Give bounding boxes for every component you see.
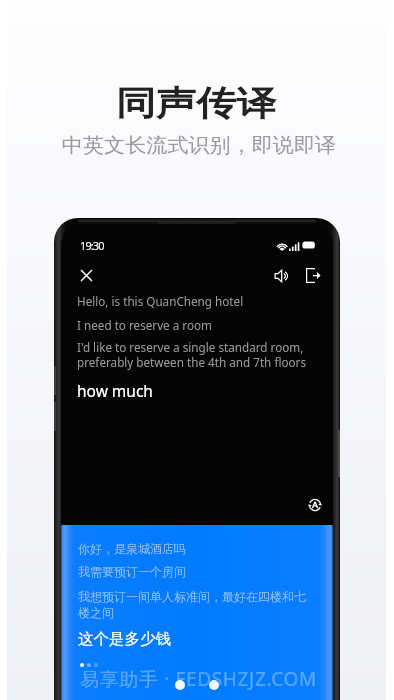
staticText: Hello, is this QuanCheng hotel: [77, 293, 244, 309]
staticText: I'd like to reserve a single standard ro…: [77, 339, 306, 371]
staticText: 同声传译: [116, 82, 276, 125]
staticText: 我需要预订一个房间: [78, 564, 186, 579]
staticText: how much: [77, 380, 153, 401]
button[interactable]: Exit: [302, 264, 325, 287]
button[interactable]: Speaker volume: [270, 264, 293, 287]
staticText: 易享助手 · FEDSHZJZ.COM: [80, 666, 317, 692]
staticText: 你好，是泉城酒店吗: [78, 541, 186, 556]
staticText: 19:30: [80, 238, 104, 253]
staticText: I need to reserve a room: [77, 317, 212, 333]
staticText: 这个是多少钱: [78, 629, 171, 649]
button[interactable]: Close: [75, 264, 98, 287]
button[interactable]: Auto translate: [307, 497, 322, 512]
staticText: 我想预订一间单人标准间，最好在四楼和七 楼之间: [78, 589, 306, 620]
staticText: 中英文长流式识别，即说即译: [62, 133, 336, 158]
